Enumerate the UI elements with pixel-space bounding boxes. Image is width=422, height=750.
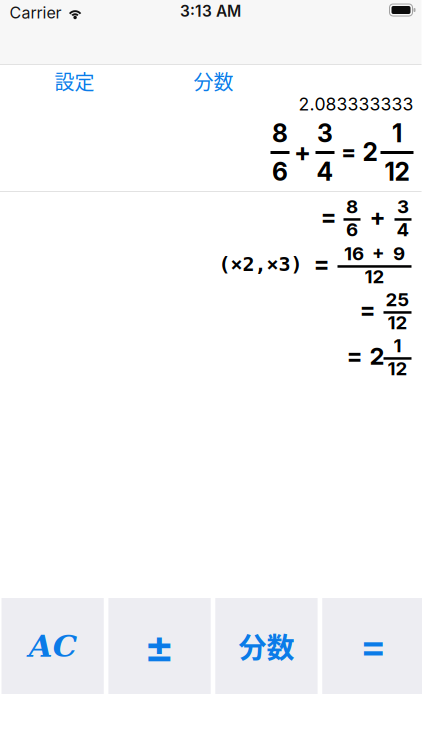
staticText: 12	[384, 157, 409, 187]
staticText: =	[313, 249, 329, 278]
staticText: (×2,×3)	[218, 252, 302, 276]
button[interactable]: Fraction	[215, 598, 318, 694]
staticText: 2.083333333	[298, 93, 413, 115]
staticText: 4	[396, 218, 409, 241]
staticText: =	[359, 295, 375, 324]
staticText: 2	[362, 137, 377, 167]
staticText: 3	[397, 195, 409, 218]
staticText: ±	[144, 619, 175, 673]
button[interactable]: 分数	[193, 66, 257, 96]
staticText: 25	[385, 288, 409, 311]
staticText: 8	[346, 195, 358, 218]
staticText: 6	[346, 218, 358, 241]
staticText: 12	[387, 357, 407, 380]
button[interactable]: All clear	[1, 598, 104, 694]
staticText: 12	[364, 265, 384, 288]
staticText: 分数	[193, 66, 233, 95]
staticText: 3	[317, 118, 333, 148]
staticText: 2	[369, 341, 384, 370]
staticText: 1	[392, 118, 402, 148]
button[interactable]: 設定	[54, 66, 118, 96]
staticText: 6	[272, 157, 288, 187]
staticText: +	[369, 202, 385, 231]
staticText: 1	[393, 334, 401, 357]
staticText: 3:13 AM	[180, 2, 241, 20]
staticText: Carrier	[9, 3, 61, 22]
staticText: +	[294, 137, 311, 167]
staticText: 12	[387, 311, 407, 334]
staticText: 4	[316, 157, 333, 187]
staticText: 設定	[54, 66, 94, 95]
staticText: 8	[272, 118, 288, 148]
staticText: =	[320, 202, 336, 231]
staticText: =	[341, 138, 356, 166]
button[interactable]: Plus minus	[108, 598, 211, 694]
staticText: 16 + 9	[344, 242, 405, 265]
staticText: AC	[29, 628, 77, 664]
button[interactable]: Equals	[322, 598, 422, 694]
staticText: 分数	[238, 626, 294, 666]
staticText: =	[360, 622, 386, 670]
staticText: =	[346, 341, 362, 370]
